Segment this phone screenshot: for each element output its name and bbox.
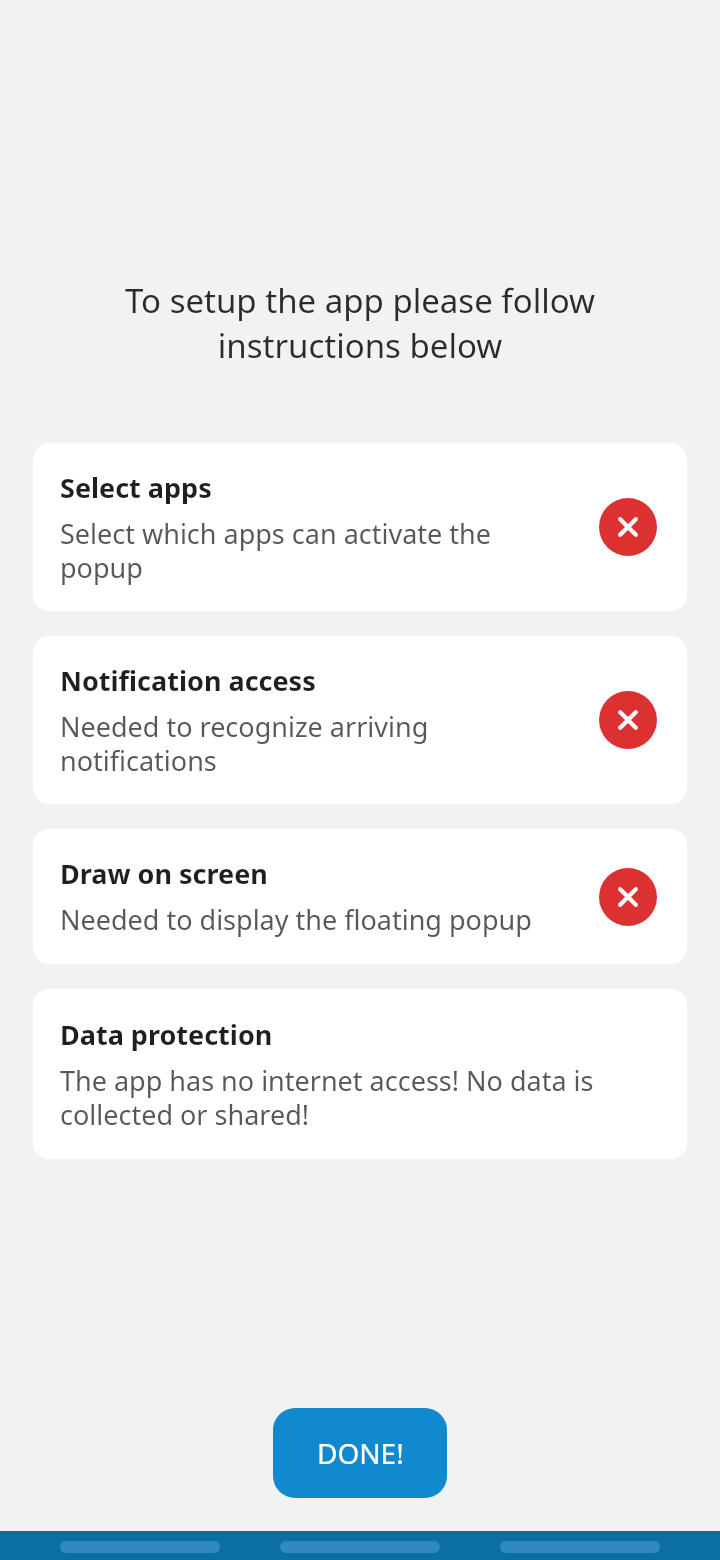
staticText: The app has no internet access! No data … — [60, 1062, 660, 1133]
staticText: Draw on screen — [60, 855, 268, 892]
button[interactable]: Not granted, tap to fix — [599, 868, 657, 926]
button[interactable]: Notification access — [33, 636, 687, 804]
button[interactable]: Select apps — [33, 443, 687, 611]
staticText: Needed to recognize arriving notificatio… — [60, 708, 557, 779]
button[interactable]: Navigation — [500, 1541, 660, 1553]
staticText: To setup the app please follow instructi… — [56, 278, 664, 367]
staticText: Needed to display the floating popup — [60, 901, 532, 938]
button[interactable]: DONE! — [273, 1408, 447, 1498]
staticText: Select which apps can activate the popup — [60, 515, 557, 586]
staticText: Data protection — [60, 1016, 273, 1053]
button[interactable]: Draw on screen — [33, 829, 687, 964]
button[interactable]: Not granted, tap to fix — [599, 691, 657, 749]
button[interactable]: Navigation — [60, 1541, 220, 1553]
staticText: DONE! — [317, 1434, 404, 1472]
staticText: Notification access — [60, 662, 316, 699]
staticText: Select apps — [60, 469, 212, 506]
button[interactable]: Navigation — [280, 1541, 440, 1553]
button[interactable]: Not granted, tap to fix — [599, 498, 657, 556]
button[interactable]: Data protection — [33, 989, 687, 1159]
